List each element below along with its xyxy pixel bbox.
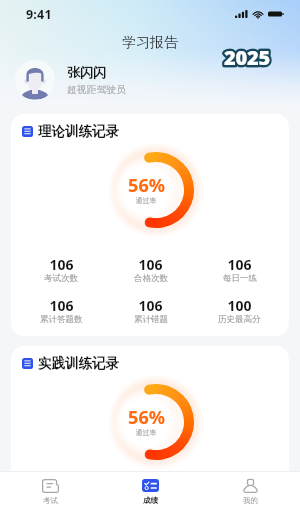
button[interactable]: 理论训练记录	[11, 114, 289, 336]
staticText: 56%	[128, 173, 165, 198]
staticText: 2025	[224, 44, 271, 71]
staticText: 超视距驾驶员	[67, 84, 126, 96]
button[interactable]: 成绩	[100, 472, 200, 505]
other: 考试	[42, 479, 59, 493]
staticText: 理论训练记录	[38, 123, 119, 140]
staticText: 100	[227, 296, 252, 315]
staticText: 56%	[128, 405, 165, 430]
staticText: 每日一练	[223, 273, 257, 284]
staticText: 考试次数	[44, 273, 78, 284]
staticText: 学习报告	[122, 34, 178, 52]
button[interactable]: 实践训练记录	[11, 346, 289, 486]
staticText: 累计答题数	[40, 314, 83, 325]
staticText: 106	[49, 296, 74, 315]
other: 我的	[243, 479, 258, 493]
staticText: 考试	[43, 496, 58, 505]
staticText: 106	[138, 255, 163, 274]
staticText: 合格次数	[134, 273, 168, 284]
staticText: 实践训练记录	[38, 355, 119, 372]
staticText: 106	[138, 296, 163, 315]
staticText: 106	[227, 255, 252, 274]
staticText: 历史最高分	[218, 314, 261, 325]
button[interactable]: 我的	[200, 472, 300, 505]
staticText: 成绩	[143, 496, 158, 505]
staticText: 2025	[224, 44, 271, 71]
button[interactable]: 考试	[0, 472, 100, 505]
staticText: 张闪闪	[67, 64, 106, 80]
staticText: 我的	[243, 496, 258, 505]
staticText: 通过率	[116, 196, 176, 205]
staticText: 9:41	[26, 6, 52, 23]
other: 成绩	[142, 479, 159, 492]
staticText: 累计错题	[134, 314, 168, 325]
staticText: 通过率	[116, 428, 176, 437]
staticText: 106	[49, 255, 74, 274]
